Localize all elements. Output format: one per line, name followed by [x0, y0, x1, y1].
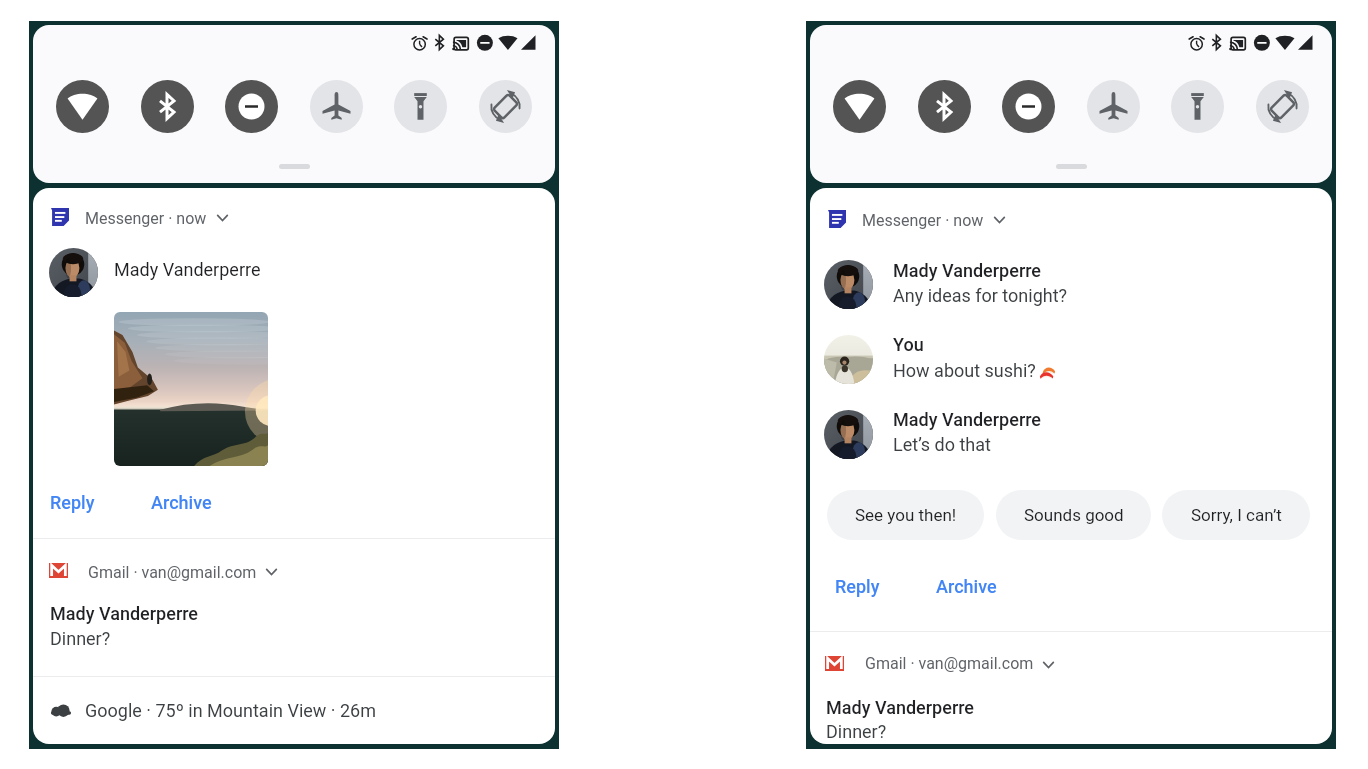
button[interactable]	[810, 188, 1332, 631]
button[interactable]: Expand notification	[1036, 653, 1060, 677]
button[interactable]: Expand notification	[259, 560, 283, 584]
staticText: Mady Vanderperre	[114, 259, 261, 280]
staticText: You	[893, 334, 924, 355]
staticText: Sounds good	[1024, 505, 1124, 525]
button[interactable]: Sounds good	[996, 490, 1151, 540]
button[interactable]: Auto rotate	[479, 80, 532, 133]
staticText: Messenger · now	[862, 211, 984, 230]
button[interactable]: Airplane mode	[310, 80, 363, 133]
button[interactable]: Do not disturb	[1002, 80, 1055, 133]
staticText: Reply	[50, 492, 95, 513]
button[interactable]: Archive	[929, 571, 1004, 602]
staticText: How about sushi?	[893, 360, 1036, 381]
button[interactable]: Wi-Fi	[833, 80, 886, 133]
button[interactable]: Reply	[43, 487, 102, 518]
staticText: Archive	[936, 576, 997, 597]
button[interactable]: Flashlight	[394, 80, 447, 133]
staticText: Let’s do that	[893, 434, 991, 455]
button[interactable]: See you then!	[827, 490, 984, 540]
staticText: Dinner?	[826, 721, 887, 742]
button[interactable]	[824, 335, 873, 384]
staticText: Sorry, I can’t	[1191, 505, 1282, 525]
staticText: Archive	[151, 492, 212, 513]
button[interactable]: Bluetooth	[141, 80, 194, 133]
button[interactable]: Archive	[144, 487, 219, 518]
staticText: Mady Vanderperre	[893, 409, 1042, 430]
staticText: Any ideas for tonight?	[893, 285, 1068, 306]
staticText: Reply	[835, 576, 880, 597]
staticText: Google · 75º in Mountain View · 26m	[85, 700, 376, 721]
button[interactable]	[810, 632, 1332, 744]
staticText: Mady Vanderperre	[50, 603, 199, 624]
staticText: Dinner?	[50, 628, 111, 649]
button[interactable]: Wi-Fi	[56, 80, 109, 133]
button[interactable]: Expand notification	[987, 208, 1011, 232]
button[interactable]: Airplane mode	[1087, 80, 1140, 133]
button[interactable]: Reply	[828, 571, 887, 602]
button[interactable]	[33, 188, 555, 538]
button[interactable]	[33, 539, 555, 676]
staticText: Messenger · now	[85, 209, 207, 228]
staticText: See you then!	[855, 505, 957, 525]
staticText: Gmail · van@gmail.com	[865, 654, 1034, 673]
button[interactable]: Auto rotate	[1256, 80, 1309, 133]
button[interactable]: Sorry, I can’t	[1162, 490, 1310, 540]
staticText: Gmail · van@gmail.com	[88, 563, 257, 582]
button[interactable]: Bluetooth	[918, 80, 971, 133]
staticText: Mady Vanderperre	[893, 260, 1042, 281]
button[interactable]: Expand notification	[210, 206, 234, 230]
button[interactable]: Flashlight	[1171, 80, 1224, 133]
button[interactable]: Do not disturb	[225, 80, 278, 133]
button[interactable]	[824, 410, 873, 459]
button[interactable]	[33, 677, 555, 744]
button[interactable]	[824, 260, 873, 309]
staticText: Mady Vanderperre	[826, 697, 975, 718]
